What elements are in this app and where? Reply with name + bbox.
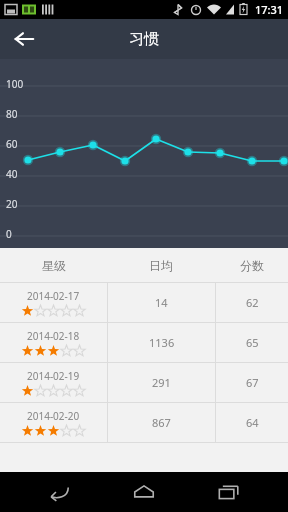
staticText: 14 [155, 295, 168, 310]
staticText: 0 [6, 227, 12, 241]
staticText: 67 [246, 375, 259, 390]
staticText: 习惯 [129, 30, 159, 49]
staticText: 80 [6, 107, 18, 121]
staticText: 100 [6, 77, 24, 91]
button[interactable]: 2014-02-20 [0, 403, 288, 442]
button[interactable]: Back [33, 472, 85, 512]
staticText: 1136 [149, 335, 175, 350]
staticText: 日均 [149, 258, 173, 273]
button[interactable]: 2014-02-18 [0, 323, 288, 362]
staticText: 2014-02-18 [27, 329, 80, 343]
button[interactable]: Back [0, 19, 48, 59]
staticText: 星级 [42, 258, 66, 273]
staticText: 2014-02-17 [27, 289, 80, 303]
staticText: 291 [152, 375, 171, 390]
staticText: 62 [246, 295, 259, 310]
staticText: 867 [152, 415, 171, 430]
staticText: 40 [6, 167, 18, 181]
staticText: 分数 [240, 258, 264, 273]
staticText: 60 [6, 137, 18, 151]
staticText: 2014-02-20 [27, 409, 80, 423]
staticText: 17:31 [255, 2, 284, 17]
button[interactable]: 2014-02-19 [0, 363, 288, 402]
staticText: 64 [246, 415, 259, 430]
button[interactable]: 2014-02-17 [0, 283, 288, 322]
button[interactable]: Home [118, 472, 170, 512]
button[interactable]: Recents [203, 472, 255, 512]
staticText: 2014-02-19 [27, 369, 80, 383]
staticText: 20 [6, 197, 18, 211]
staticText: 65 [246, 335, 259, 350]
